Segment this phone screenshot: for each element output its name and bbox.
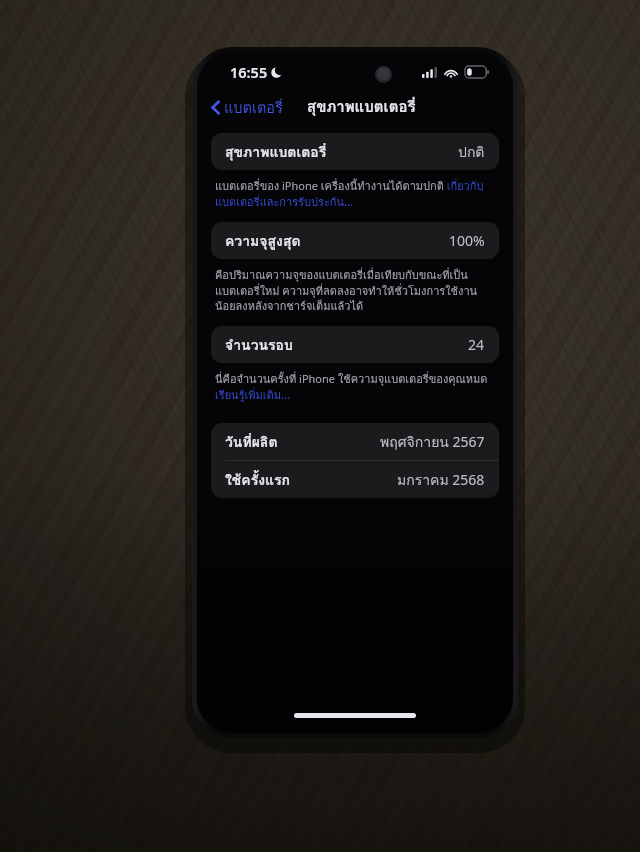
staticText: แบตเตอรี่ของ iPhone เครื่องนี้ทำงานได้ตา… [215, 177, 497, 211]
button[interactable]: นี่คือจำนวนครั้งที่ iPhone ใช้ความจุแบตเ… [211, 363, 499, 404]
staticText: ปกติ [458, 141, 485, 163]
button[interactable]: จำนวนรอบ [211, 326, 499, 363]
button[interactable]: แบตเตอรี่ [197, 92, 291, 122]
staticText: พฤศจิกายน 2567 [380, 431, 485, 453]
button[interactable]: ความจุสูงสุด [211, 222, 499, 259]
staticText: คือปริมาณความจุของแบตเตอรี่เมื่อเทียบกับ… [215, 266, 497, 315]
staticText: นี่คือจำนวนครั้งที่ iPhone ใช้ความจุแบตเ… [215, 370, 497, 404]
button[interactable]: วันที่ผลิต [211, 423, 499, 460]
staticText: แบตเตอรี่ [224, 96, 283, 118]
staticText: ใช้ครั้งแรก [225, 469, 291, 491]
staticText: 16:55 [230, 62, 268, 82]
staticText: ความจุสูงสุด [225, 230, 301, 252]
button[interactable]: สุขภาพแบตเตอรี่ [211, 133, 499, 170]
staticText: มกราคม 2568 [397, 469, 485, 491]
staticText: 100% [449, 231, 485, 250]
staticText: วันที่ผลิต [225, 431, 278, 453]
staticText: สุขภาพแบตเตอรี่ [307, 95, 416, 119]
staticText: จำนวนรอบ [225, 334, 293, 356]
button[interactable]: ใช้ครั้งแรก [211, 461, 499, 498]
staticText: 24 [468, 335, 485, 354]
staticText: สุขภาพแบตเตอรี่ [225, 141, 327, 163]
other: Home indicator [294, 713, 416, 718]
button[interactable]: แบตเตอรี่ของ iPhone เครื่องนี้ทำงานได้ตา… [211, 170, 499, 211]
